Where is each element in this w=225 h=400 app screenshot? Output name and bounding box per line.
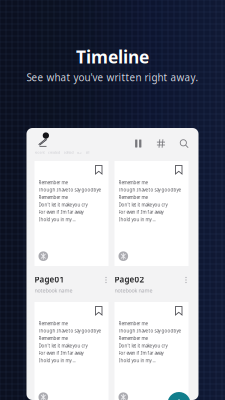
button[interactable]: Tags xyxy=(149,137,172,150)
button[interactable]: Remember me xyxy=(114,161,188,266)
staticText: recent xyxy=(34,150,44,155)
staticText: Timeline xyxy=(76,45,149,69)
staticText: Don't let it make you cry xyxy=(38,343,87,349)
staticText: edited xyxy=(63,150,73,155)
staticText: For even if I'm far away xyxy=(38,209,83,215)
staticText: Don't let it make you cry xyxy=(118,343,167,349)
staticText: Remember me xyxy=(118,194,147,200)
staticText: Remember me xyxy=(38,335,67,341)
staticText: Remember me xyxy=(118,335,147,341)
staticText: For even if I'm far away xyxy=(38,350,83,356)
staticText: Though I have to say goodbye xyxy=(38,187,100,193)
staticText: Though I have to say goodbye xyxy=(118,187,180,193)
staticText: all xyxy=(85,150,89,155)
staticText: Remember me xyxy=(38,179,67,185)
staticText: I hold you in my ... xyxy=(118,357,155,363)
staticText: Though I have to say goodbye xyxy=(118,328,180,334)
staticText: I hold you in my ... xyxy=(38,216,75,222)
staticText: For even if I'm far away xyxy=(118,209,163,215)
button[interactable]: Search xyxy=(172,137,188,150)
button[interactable]: New note xyxy=(167,392,190,400)
staticText: See what you've written right away. xyxy=(26,71,198,84)
staticText: Remember me xyxy=(38,194,67,200)
button[interactable]: Page01 xyxy=(34,266,108,302)
button[interactable]: Layout xyxy=(127,137,149,150)
staticText: Page02 xyxy=(114,274,144,285)
staticText: I hold you in my ... xyxy=(38,357,75,363)
staticText: Remember me xyxy=(118,179,147,185)
staticText: Don't let it make you cry xyxy=(118,202,167,208)
staticText: Though I have to say goodbye xyxy=(38,328,100,334)
staticText: notebook name xyxy=(34,287,72,294)
staticText: Remember me xyxy=(38,320,67,326)
staticText: For even if I'm far away xyxy=(118,350,163,356)
staticText: a-z xyxy=(77,150,82,155)
staticText: created xyxy=(48,150,60,155)
button[interactable]: Page02 xyxy=(114,266,188,302)
staticText: Remember me xyxy=(118,320,147,326)
staticText: Page01 xyxy=(34,274,64,285)
staticText: notebook name xyxy=(114,287,152,294)
button[interactable]: Remember me xyxy=(114,302,188,400)
button[interactable]: Remember me xyxy=(34,302,108,400)
staticText: I hold you in my ... xyxy=(118,216,155,222)
button[interactable]: Remember me xyxy=(34,161,108,266)
staticText: Don't let it make you cry xyxy=(38,202,87,208)
